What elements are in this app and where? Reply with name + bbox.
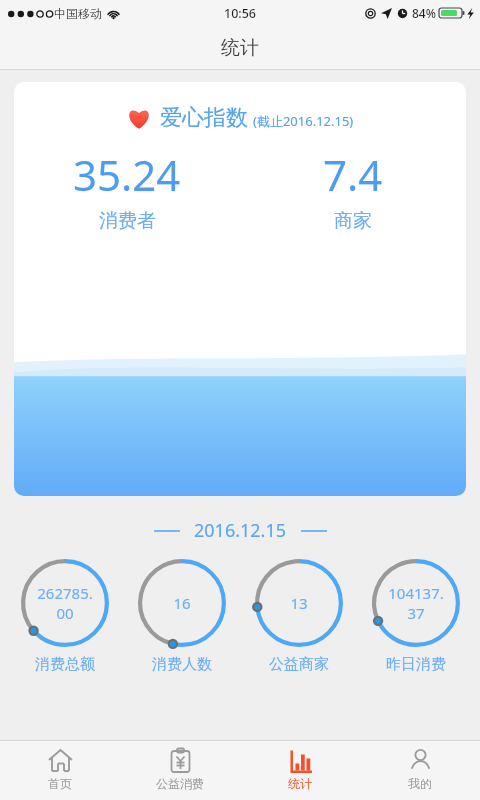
button[interactable]: 爱心指数 — [14, 82, 466, 496]
staticText: 统计 — [221, 36, 259, 60]
button[interactable]: 13 — [240, 557, 357, 674]
staticText: 消费者 — [99, 209, 156, 233]
other: 统计 — [288, 748, 313, 773]
button[interactable]: 公益消费 — [120, 741, 240, 800]
staticText: 公益商家 — [269, 655, 329, 674]
button[interactable]: 统计 — [240, 741, 360, 800]
staticText: 商家 — [334, 209, 372, 233]
staticText: 16 — [173, 593, 191, 613]
staticText: 统计 — [288, 776, 312, 791]
staticText: 爱心指数 — [160, 104, 248, 132]
staticText: 我的 — [408, 776, 432, 791]
staticText: 2016.12.15 — [194, 518, 287, 543]
staticText: 消费人数 — [152, 655, 212, 674]
button[interactable]: 我的 — [360, 741, 480, 800]
button[interactable]: 262785.00 — [6, 557, 123, 674]
other: 公益消费 — [168, 748, 193, 773]
button[interactable]: 首页 — [0, 741, 120, 800]
staticText: 首页 — [48, 776, 72, 791]
staticText: 10:56 — [224, 5, 257, 22]
staticText: 13 — [290, 593, 308, 613]
staticText: 262785.00 — [33, 583, 97, 623]
staticText: 84% — [412, 5, 436, 21]
button[interactable]: 104137.37 — [357, 557, 474, 674]
staticText: 消费总额 — [35, 655, 95, 674]
staticText: 中国移动 — [54, 6, 102, 21]
other: 我的 — [408, 748, 433, 773]
staticText: 7.4 — [323, 146, 383, 203]
staticText: 35.24 — [73, 146, 181, 203]
staticText: 104137.37 — [384, 583, 448, 623]
staticText: (截止2016.12.15) — [253, 112, 354, 130]
staticText: 公益消费 — [156, 776, 204, 791]
other: 首页 — [48, 748, 73, 773]
button[interactable]: 16 — [123, 557, 240, 674]
staticText: 昨日消费 — [386, 655, 446, 674]
